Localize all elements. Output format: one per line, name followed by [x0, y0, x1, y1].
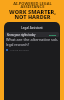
- staticText: Ask me anything: [10, 48, 29, 51]
- staticText: AI-POWERED LEGAL ASSISTANCE: [13, 1, 52, 9]
- staticText: START: [49, 33, 57, 36]
- staticText: WORK SMARTER, NOT HARDER: [9, 8, 56, 20]
- button[interactable]: Know your rights today: [5, 32, 59, 37]
- staticText: Know your rights today: [7, 33, 36, 37]
- staticText: Legal Assistant: [4, 26, 60, 30]
- button[interactable]: Ask me anything: [6, 48, 58, 51]
- staticText: What are the alternative solutions for: [6, 37, 58, 42]
- staticText: legal research?: [6, 42, 30, 46]
